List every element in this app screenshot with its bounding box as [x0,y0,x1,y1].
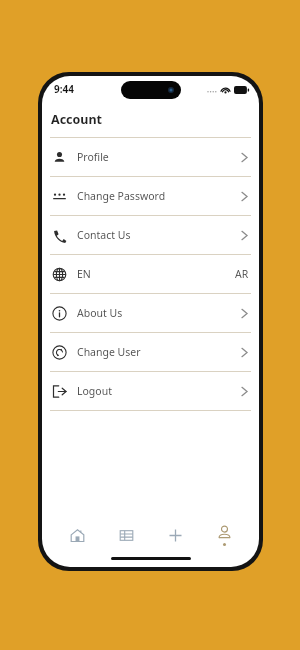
staticText: 9:44 [54,82,74,96]
staticText: Profile [77,150,109,164]
button[interactable]: Contact Us [42,216,259,254]
button[interactable]: Change User [42,333,259,371]
button[interactable]: Add [152,518,198,552]
button[interactable]: About Us [42,294,259,332]
staticText: EN [77,267,91,281]
staticText: AR [235,267,249,281]
staticText: About Us [77,306,123,320]
button[interactable]: Account [201,518,247,552]
staticText: Change User [77,345,141,359]
staticText: Logout [77,384,112,398]
button[interactable]: Logout [42,372,259,410]
button[interactable]: Home [54,518,100,552]
button[interactable]: EN [42,255,259,293]
staticText: Contact Us [77,228,131,242]
button[interactable]: Change Password [42,177,259,215]
staticText: Account [51,111,103,128]
button[interactable]: Profile [42,138,259,176]
button[interactable]: Orders [103,518,149,552]
staticText: Change Password [77,189,166,203]
